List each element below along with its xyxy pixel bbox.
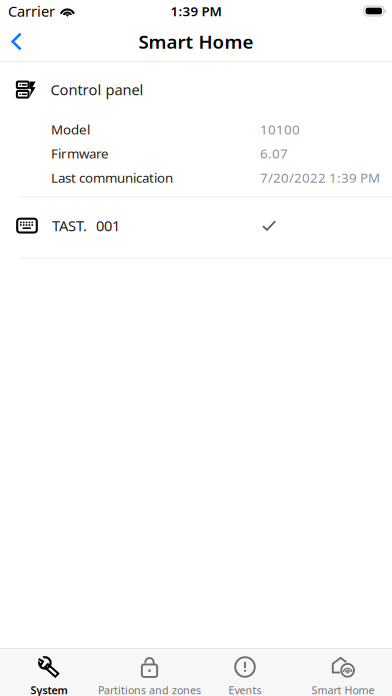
staticText: System: [30, 683, 67, 696]
staticText: TAST.: [52, 216, 87, 235]
button[interactable]: System: [0, 649, 98, 696]
staticText: Control panel: [50, 80, 143, 99]
button[interactable]: Back: [0, 22, 40, 61]
staticText: 10100: [260, 120, 300, 138]
staticText: Smart Home: [138, 29, 253, 54]
staticText: Events: [228, 683, 261, 696]
staticText: Carrier: [8, 1, 55, 21]
button[interactable]: Partitions and zones: [98, 649, 196, 696]
staticText: Last communication: [51, 169, 173, 186]
staticText: 1:39 PM: [170, 2, 221, 20]
staticText: Model: [51, 120, 90, 138]
button[interactable]: Smart Home: [294, 649, 392, 696]
staticText: Smart Home: [311, 683, 374, 696]
staticText: Firmware: [51, 145, 109, 162]
button[interactable]: TAST.: [0, 198, 392, 258]
staticText: Partitions and zones: [98, 683, 201, 696]
staticText: 6.07: [260, 145, 288, 162]
staticText: 7/20/2022 1:39 PM: [260, 169, 380, 186]
staticText: 001: [96, 216, 120, 235]
button[interactable]: Events: [196, 649, 294, 696]
